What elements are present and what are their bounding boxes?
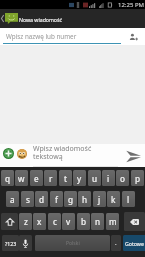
staticText: c (53, 216, 57, 227)
staticText: k (111, 194, 116, 205)
staticText: j (98, 194, 101, 205)
button[interactable]: Back (0, 9, 19, 28)
staticText: a (10, 194, 15, 205)
staticText: w (18, 173, 25, 184)
button[interactable]: Send (122, 145, 144, 167)
staticText: d (39, 194, 45, 205)
staticText: u (92, 173, 98, 184)
staticText: l (127, 194, 130, 205)
staticText: . (115, 239, 117, 247)
staticText: r (49, 173, 53, 184)
staticText: g (68, 194, 74, 205)
staticText: ?123 (5, 240, 17, 247)
staticText: Gotowe (125, 240, 144, 247)
staticText: e (34, 173, 39, 184)
button[interactable]: Attach (1, 146, 16, 161)
button[interactable]: q (1, 170, 14, 186)
staticText: Wpisz wiadomość tekstową (33, 144, 92, 161)
button[interactable]: Backspace (124, 212, 145, 231)
staticText: q (5, 173, 11, 184)
button[interactable]: b (77, 213, 90, 230)
staticText: p (135, 173, 141, 184)
staticText: x (37, 216, 42, 227)
staticText: o (120, 173, 125, 184)
button[interactable]: Emoji (15, 147, 29, 161)
button[interactable]: v (62, 213, 75, 230)
button[interactable]: y (73, 170, 86, 186)
staticText: m (109, 216, 117, 227)
staticText: h (82, 194, 88, 205)
button[interactable]: i (102, 170, 115, 186)
staticText: z (24, 216, 28, 227)
staticText: t (64, 173, 67, 184)
staticText: v (66, 216, 71, 227)
staticText: b (81, 216, 87, 227)
button[interactable]: z (19, 213, 32, 230)
button[interactable]: Shift (1, 213, 18, 230)
button[interactable]: Gotowe (123, 235, 145, 251)
staticText: i (107, 173, 110, 184)
button[interactable]: r (44, 170, 57, 186)
button[interactable]: p (131, 170, 144, 186)
button[interactable]: j (93, 191, 106, 207)
staticText: n (95, 216, 101, 227)
staticText: Nowa wiadomość (19, 16, 62, 23)
button[interactable]: m (106, 213, 119, 230)
staticText: Polski (66, 240, 80, 247)
button[interactable]: f (50, 191, 63, 207)
button[interactable]: Voice input (19, 235, 32, 251)
staticText: Wpisz nazwę lub numer (6, 32, 77, 41)
button[interactable]: Space (35, 235, 110, 251)
button[interactable]: k (107, 191, 120, 207)
button[interactable]: g (64, 191, 77, 207)
button[interactable]: d (35, 191, 48, 207)
button[interactable]: w (15, 170, 28, 186)
button[interactable]: h (78, 191, 91, 207)
button[interactable]: . (111, 235, 121, 251)
button[interactable]: o (116, 170, 129, 186)
button[interactable]: n (91, 213, 104, 230)
staticText: s (26, 194, 30, 205)
staticText: y (77, 173, 82, 184)
button[interactable]: Add contact (126, 29, 142, 45)
staticText: f (55, 194, 58, 205)
button[interactable]: x (33, 213, 46, 230)
button[interactable]: e (30, 170, 43, 186)
staticText: 12:25 PM (118, 1, 144, 9)
button[interactable]: t (59, 170, 72, 186)
button[interactable]: c (48, 213, 61, 230)
button[interactable]: l (122, 191, 135, 207)
button[interactable]: ?123 (2, 235, 19, 251)
button[interactable]: a (6, 191, 19, 207)
button[interactable]: s (21, 191, 34, 207)
button[interactable]: u (88, 170, 101, 186)
